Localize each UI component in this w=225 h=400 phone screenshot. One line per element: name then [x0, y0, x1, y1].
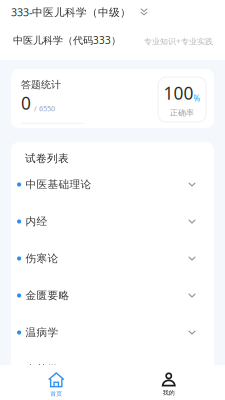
staticText: 中医基础理论 — [26, 178, 92, 191]
staticText: 内经 — [26, 215, 48, 228]
button[interactable]: 内经 — [11, 203, 214, 240]
staticText: 333-中医儿科学（中级） — [11, 5, 131, 19]
staticText: 中药学 — [26, 363, 59, 376]
button[interactable]: 伤寒论 — [11, 240, 214, 277]
button[interactable]: 首页 — [0, 365, 112, 400]
staticText: 试卷列表 — [25, 152, 69, 165]
staticText: % — [193, 93, 200, 104]
staticText: 我的 — [163, 389, 175, 397]
staticText: 伤寒论 — [26, 252, 59, 265]
button[interactable]: 中医基础理论 — [11, 166, 214, 203]
button[interactable]: 中药学 — [11, 351, 214, 388]
staticText: 金匮要略 — [26, 289, 70, 302]
button[interactable]: 金匮要略 — [11, 277, 214, 314]
button[interactable]: 温病学 — [11, 314, 214, 351]
staticText: 100 — [163, 81, 193, 105]
staticText: 首页 — [50, 390, 62, 398]
staticText: 温病学 — [26, 326, 59, 339]
staticText: 中医儿科学（代码333） — [13, 33, 121, 47]
staticText: 答题统计 — [21, 78, 61, 91]
staticText: 专业知识+专业实践 — [144, 36, 213, 47]
button[interactable]: 我的 — [112, 365, 225, 400]
button[interactable]: 333-中医儿科学（中级） — [0, 0, 225, 24]
staticText: 0 — [21, 91, 31, 115]
staticText: / 6550 — [34, 103, 55, 113]
staticText: 正确率 — [170, 108, 194, 118]
